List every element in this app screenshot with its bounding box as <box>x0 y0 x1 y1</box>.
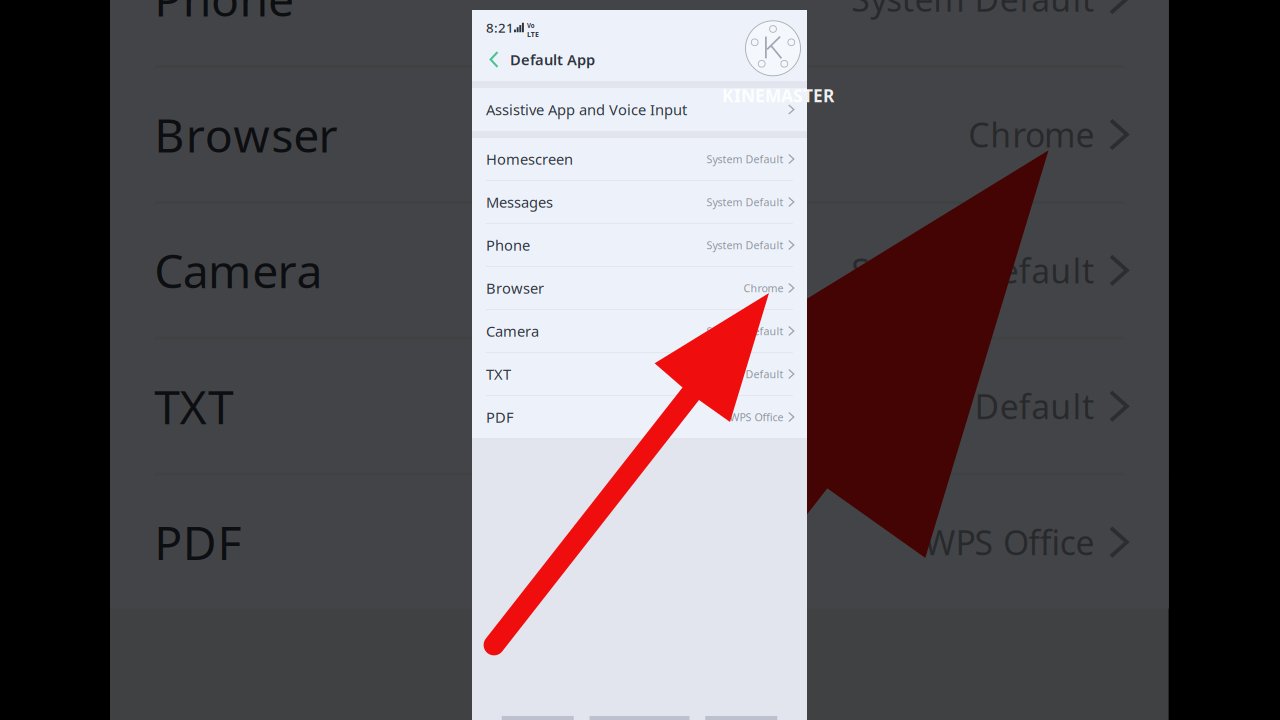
staticText: Homescreen <box>486 149 573 169</box>
staticText: Phone <box>486 235 530 255</box>
staticText: System Default <box>707 238 784 252</box>
button[interactable]: TXT <box>472 353 807 395</box>
staticText: System Default <box>707 367 784 381</box>
staticText: Camera <box>486 321 539 341</box>
staticText: Vo <box>527 21 549 44</box>
staticText: Default App <box>510 50 595 69</box>
staticText: Chrome <box>744 281 784 295</box>
staticText: 8:21 <box>486 19 514 36</box>
button[interactable]: Browser <box>472 267 807 309</box>
staticText: Browser <box>486 278 544 298</box>
staticText: System Default <box>707 324 784 338</box>
staticText: WPS Office <box>730 410 784 424</box>
staticText: Assistive App and Voice Input <box>486 100 687 119</box>
button[interactable]: PDF <box>472 396 807 438</box>
staticText: LTE <box>527 44 561 71</box>
staticText: PDF <box>486 407 514 427</box>
button[interactable]: Assistive App and Voice Input <box>472 88 807 131</box>
button[interactable]: Messages <box>472 181 807 223</box>
staticText: System Default <box>707 152 784 166</box>
staticText: System Default <box>707 195 784 209</box>
staticText: KINEMASTER <box>722 84 834 107</box>
staticText: Messages <box>486 192 553 212</box>
button[interactable]: Homescreen <box>472 138 807 180</box>
button[interactable]: Phone <box>472 224 807 266</box>
button[interactable]: Camera <box>472 310 807 352</box>
button[interactable]: Back <box>478 42 510 76</box>
staticText: TXT <box>486 364 511 384</box>
